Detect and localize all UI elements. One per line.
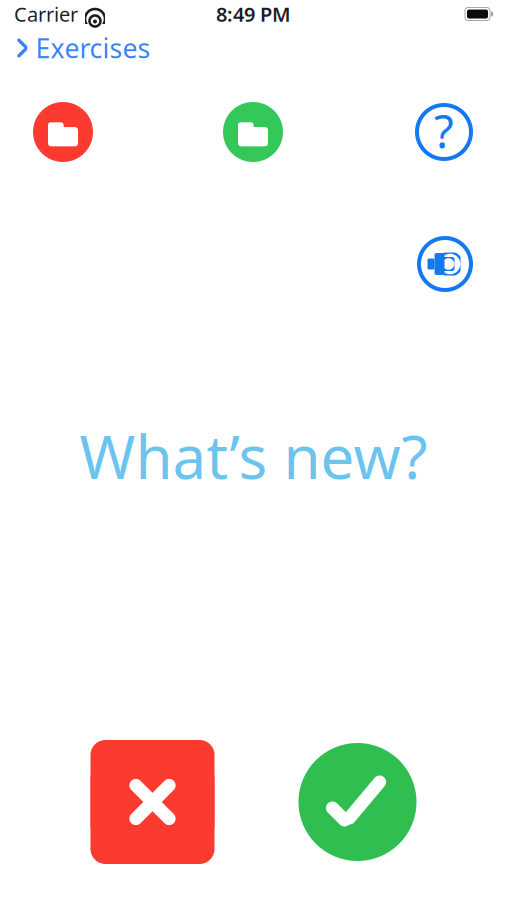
button[interactable]: Play sound: [417, 236, 473, 292]
button[interactable]: Help: [415, 103, 473, 161]
button[interactable]: Red folder: [33, 102, 93, 162]
staticText: Exercises: [36, 30, 151, 66]
staticText: What’s new?: [79, 416, 427, 496]
button[interactable]: Green folder: [223, 102, 283, 162]
button[interactable]: Exercises: [0, 22, 163, 74]
button[interactable]: Correct: [298, 743, 416, 861]
staticText: 8:49 PM: [216, 1, 291, 27]
button[interactable]: Incorrect: [90, 740, 214, 864]
staticText: Carrier: [14, 1, 78, 27]
staticText: ?: [434, 101, 454, 161]
